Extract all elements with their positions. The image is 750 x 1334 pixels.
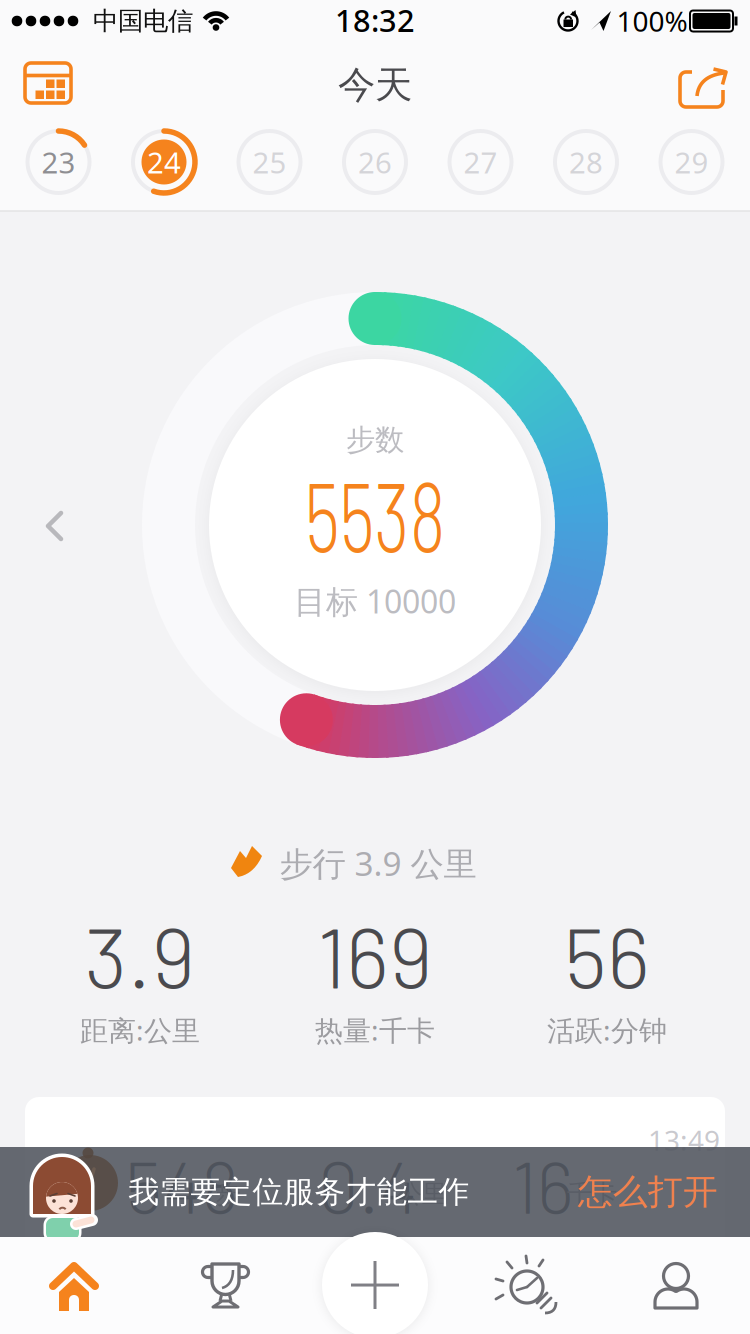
button[interactable]: 成就	[165, 1227, 285, 1334]
staticText: 步数	[346, 422, 404, 458]
staticText: 25	[252, 142, 286, 181]
staticText: 怎么打开	[578, 1171, 718, 1213]
button[interactable]: 我的	[616, 1229, 736, 1334]
button[interactable]: 25日	[229, 122, 309, 202]
staticText: 100%	[616, 2, 687, 40]
staticText: 28	[569, 142, 603, 181]
button[interactable]: 步行记录 13:49	[25, 1097, 725, 1334]
staticText: 29	[674, 142, 708, 181]
staticText: 16	[512, 1142, 574, 1228]
staticText: 27	[463, 142, 497, 181]
staticText: 13:49	[648, 1121, 720, 1159]
staticText: 169	[317, 905, 433, 1005]
staticText: 热量:千卡	[315, 1011, 435, 1049]
button[interactable]: 日历	[8, 48, 88, 118]
staticText: 5538	[276, 456, 474, 572]
staticText: 中国电信	[93, 5, 193, 36]
staticText: 56	[564, 905, 650, 1005]
button[interactable]: 发现	[468, 1227, 588, 1334]
button[interactable]: 28日	[546, 122, 626, 202]
button[interactable]: 怎么打开	[553, 1149, 743, 1235]
staticText: 距离:公里	[80, 1011, 200, 1049]
staticText: 我需要定位服务才能工作	[128, 1173, 469, 1211]
staticText: 18:32	[335, 0, 415, 40]
staticText: 548	[125, 1142, 238, 1228]
button[interactable]: 前一天	[35, 511, 75, 541]
staticText: 3.9	[84, 905, 195, 1005]
staticText: 步	[215, 1178, 240, 1209]
button[interactable]: 29日	[651, 122, 731, 202]
button[interactable]: 添加	[315, 1225, 435, 1334]
button[interactable]: 首页	[14, 1228, 134, 1334]
staticText: 目标 10000	[294, 580, 456, 622]
button[interactable]: 24日	[124, 122, 204, 202]
staticText: 0.4	[318, 1142, 418, 1228]
staticText: 26	[358, 142, 392, 181]
button[interactable]: 26日	[335, 122, 415, 202]
staticText: 步行 3.9 公里	[279, 841, 476, 885]
staticText: 23	[41, 142, 75, 181]
staticText: 公里	[397, 1178, 447, 1209]
staticText: 千卡	[567, 1178, 617, 1209]
staticText: 活跃:分钟	[547, 1011, 667, 1049]
button[interactable]: 27日	[440, 122, 520, 202]
button[interactable]: 23日	[18, 122, 98, 202]
staticText: 今天	[338, 62, 412, 108]
button[interactable]: 分享	[662, 50, 742, 120]
staticText: 24	[147, 142, 181, 181]
